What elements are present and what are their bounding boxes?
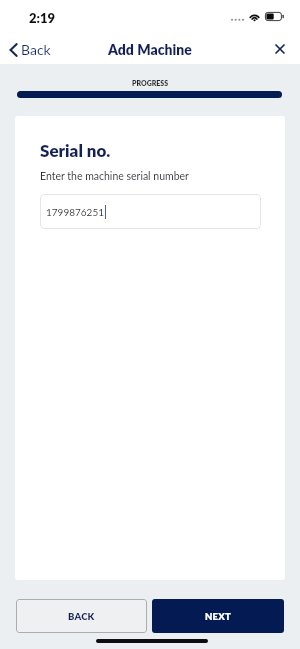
button[interactable]: Close [269, 38, 291, 60]
staticText: BACK [68, 611, 95, 622]
button[interactable]: Back [0, 36, 61, 63]
staticText: 2:19 [29, 10, 56, 26]
staticText: PROGRESS [132, 79, 169, 87]
button[interactable]: BACK [16, 599, 147, 633]
staticText: Add Machine [108, 41, 192, 58]
staticText: NEXT [205, 611, 231, 622]
button[interactable]: NEXT [152, 599, 284, 633]
staticText: Serial no. [40, 140, 111, 160]
staticText: 1799876251 [46, 206, 105, 218]
staticText: Back [21, 41, 51, 58]
staticText: Enter the machine serial number [40, 170, 189, 183]
button[interactable]: 1799876251 [40, 194, 261, 229]
